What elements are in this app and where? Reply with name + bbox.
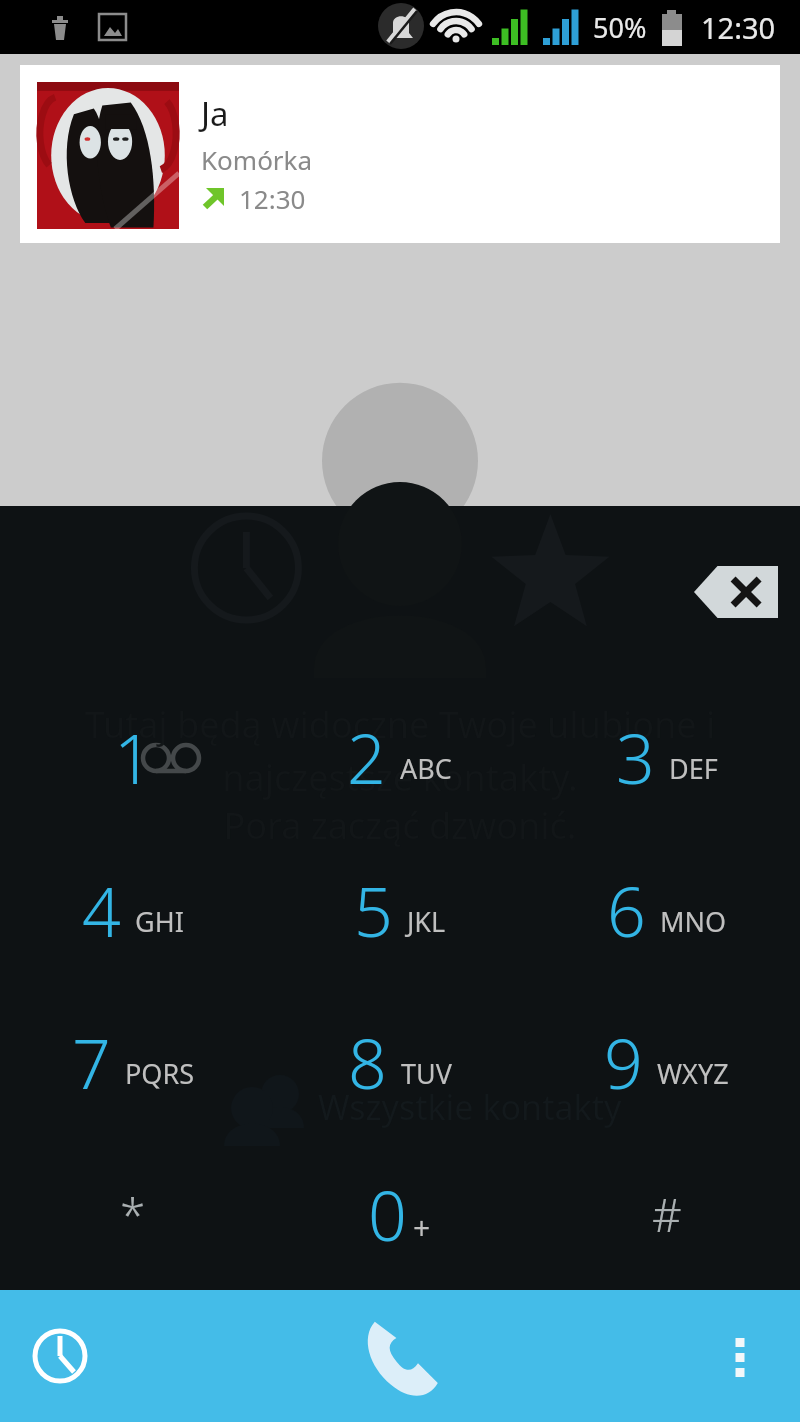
button[interactable]: # [533,1138,800,1290]
button[interactable]: 8 [266,986,533,1138]
staticText: Komórka [201,142,313,177]
button[interactable]: 9 [533,986,800,1138]
button[interactable]: 4 [0,834,266,986]
button[interactable]: 7 [0,986,266,1138]
button[interactable]: 1 [0,681,266,834]
staticText: 1 [114,711,153,804]
button[interactable]: 0 [266,1138,533,1290]
staticText: 12:30 [701,8,776,47]
staticText: 50% [593,9,647,46]
button[interactable]: Backspace [694,566,778,618]
staticText: # [652,1183,682,1246]
staticText: Tutaj będą widoczne Twoje ulubione i naj… [40,700,760,801]
staticText: WXYZ [657,1055,729,1092]
button[interactable]: 3 [533,681,800,834]
staticText: MNO [660,903,727,940]
staticText: 8 [348,1016,387,1109]
staticText: Wszystkie kontakty [318,1084,622,1130]
staticText: GHI [135,903,184,940]
staticText: 5 [354,864,393,957]
staticText: ABC [400,750,452,787]
staticText: 6 [607,864,646,957]
staticText: 4 [82,864,121,957]
button[interactable]: More options [698,1314,782,1398]
staticText: JKL [407,903,446,940]
button[interactable]: * [0,1138,266,1290]
staticText: 7 [72,1016,111,1109]
staticText: 12:30 [239,181,306,216]
staticText: 0 [368,1168,407,1261]
staticText: PQRS [125,1055,195,1092]
button[interactable]: 2 [266,681,533,834]
staticText: Ja [201,91,229,136]
staticText: 3 [616,711,655,804]
staticText: 9 [604,1016,643,1109]
staticText: + [413,1207,431,1248]
button[interactable]: Recent calls [18,1314,102,1398]
button[interactable]: Dialpad [340,1296,460,1416]
staticText: 2 [347,711,386,804]
button[interactable]: Ja [20,65,780,243]
button[interactable]: 5 [266,834,533,986]
staticText: DEF [669,750,718,787]
staticText: TUV [401,1055,452,1092]
staticText: * [120,1183,146,1246]
button[interactable]: 6 [533,834,800,986]
